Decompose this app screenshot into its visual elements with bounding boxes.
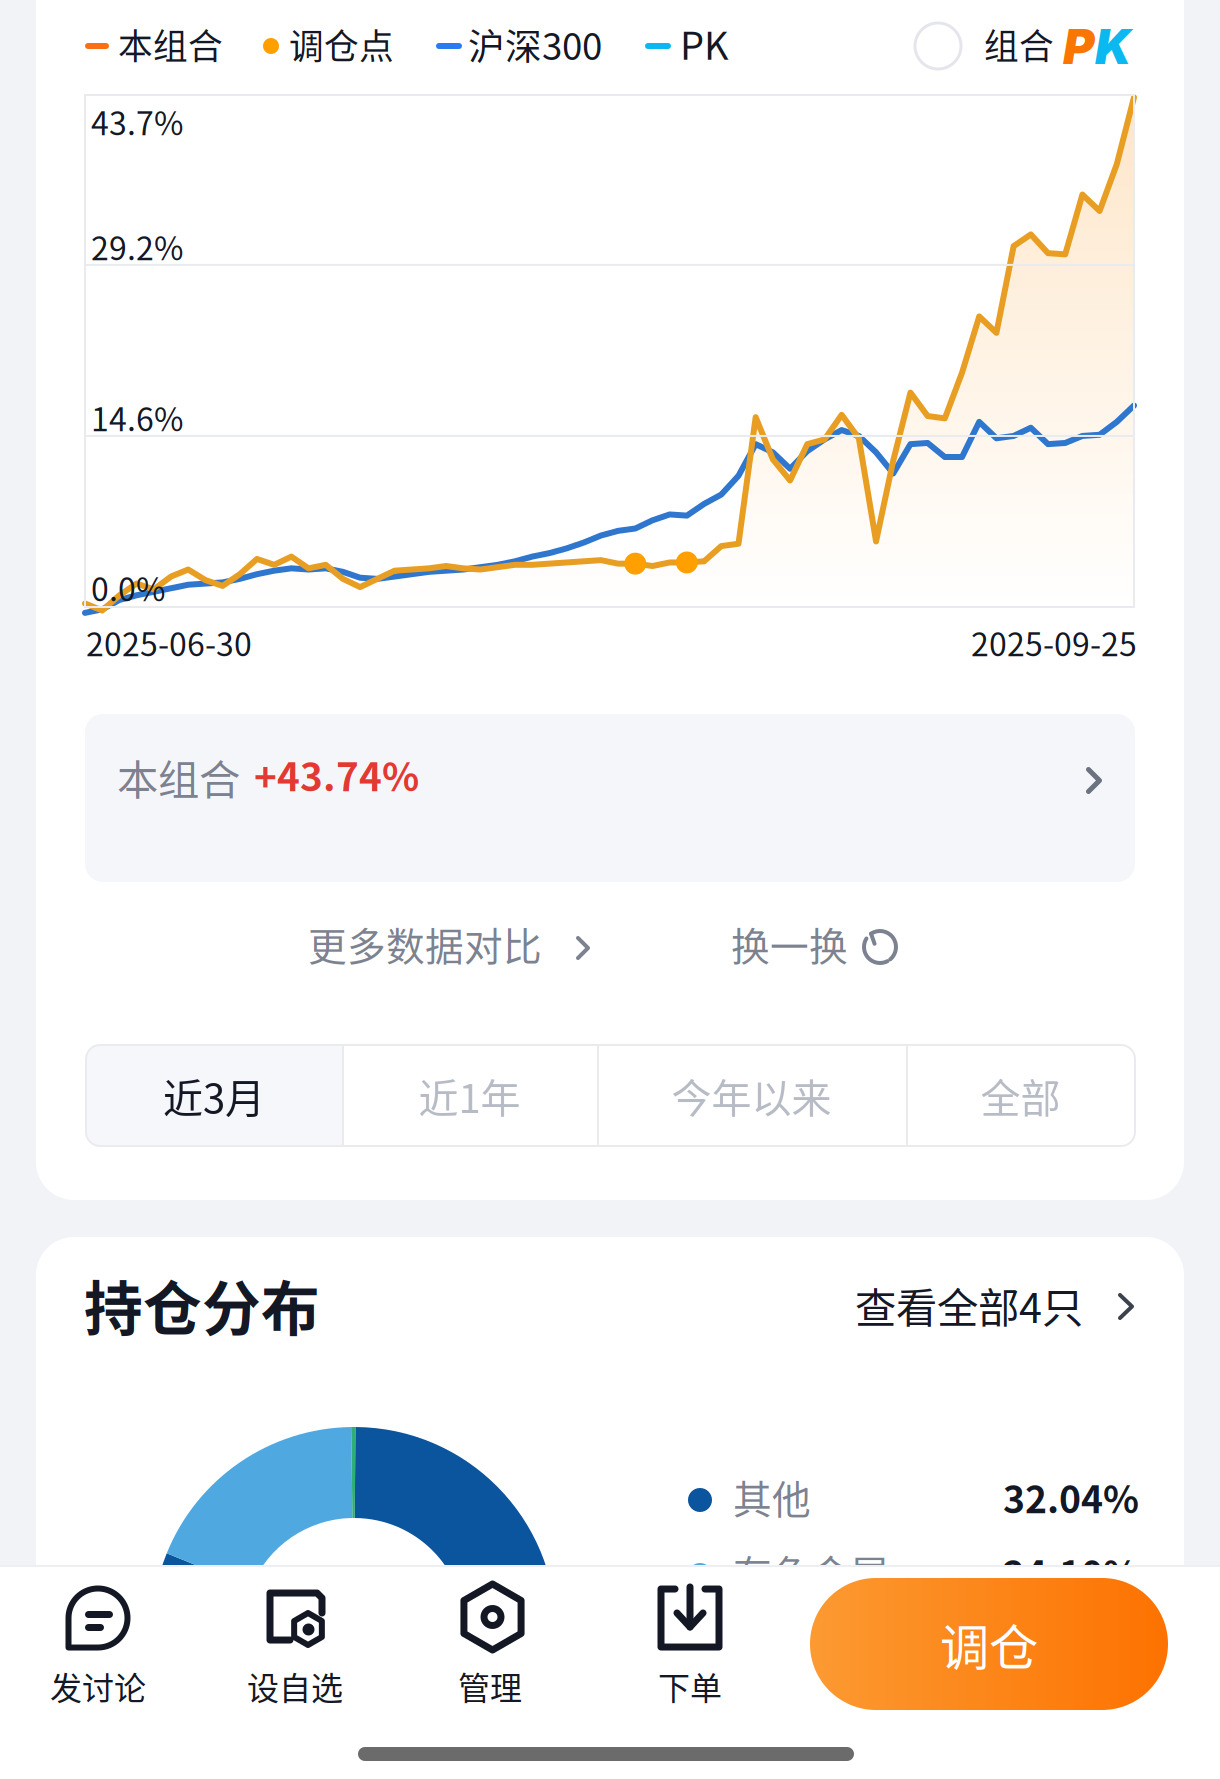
staticText: 今年以来 <box>671 1066 831 1124</box>
button[interactable]: 全部 <box>906 1045 1135 1146</box>
staticText: 24.10% <box>1003 1545 1139 1599</box>
staticText: 近1年 <box>418 1066 520 1124</box>
button[interactable]: 下单 <box>590 1585 790 1725</box>
staticText: 管理 <box>458 1663 522 1709</box>
staticText: 组合 <box>984 19 1054 69</box>
staticText: K <box>1095 17 1131 75</box>
button[interactable]: 更多数据对比 <box>306 924 606 974</box>
staticText: PK <box>680 16 729 71</box>
button[interactable]: 本组合 <box>85 714 1135 882</box>
staticText: 2025-09-25 <box>971 619 1137 665</box>
staticText: 有色金属 <box>733 1544 889 1600</box>
staticText: 沪深300 <box>468 17 602 71</box>
button[interactable]: 设自选 <box>195 1585 395 1725</box>
button[interactable]: 调仓 <box>810 1578 1168 1710</box>
button[interactable]: 发讨论 <box>0 1585 198 1725</box>
button[interactable]: 近3月 <box>86 1045 342 1146</box>
staticText: +43.74% <box>254 746 419 802</box>
button[interactable]: 近1年 <box>342 1045 597 1146</box>
staticText: 换一换 <box>731 916 848 972</box>
staticText: 本组合 <box>118 19 223 69</box>
staticText: 调仓 <box>940 1608 1038 1680</box>
staticText: 设自选 <box>247 1663 343 1709</box>
staticText: P <box>1063 17 1094 75</box>
staticText: 发讨论 <box>50 1663 146 1709</box>
staticText: 32.04% <box>1003 1470 1139 1524</box>
staticText: 29.2% <box>91 223 183 269</box>
staticText: 2025-06-30 <box>86 619 252 665</box>
staticText: 更多数据对比 <box>308 916 542 972</box>
staticText: 持仓分布 <box>84 1262 320 1347</box>
staticText: 调仓点 <box>289 19 394 69</box>
staticText: 其他 <box>733 1469 811 1525</box>
button[interactable]: 换一换 <box>729 924 909 974</box>
staticText: 查看全部4只 <box>855 1275 1083 1335</box>
staticText: 下单 <box>658 1663 722 1709</box>
staticText: 全部 <box>980 1066 1060 1124</box>
staticText: 0.0% <box>91 564 165 610</box>
button[interactable]: 管理 <box>390 1585 590 1725</box>
button[interactable]: 查看全部4只 <box>853 1283 1143 1333</box>
button[interactable]: 今年以来 <box>597 1045 906 1146</box>
staticText: 本组合 <box>117 747 240 807</box>
button[interactable]: 组合 <box>905 12 1145 82</box>
staticText: 43.7% <box>91 98 183 144</box>
staticText: 14.6% <box>91 394 183 440</box>
staticText: 近3月 <box>163 1066 265 1124</box>
